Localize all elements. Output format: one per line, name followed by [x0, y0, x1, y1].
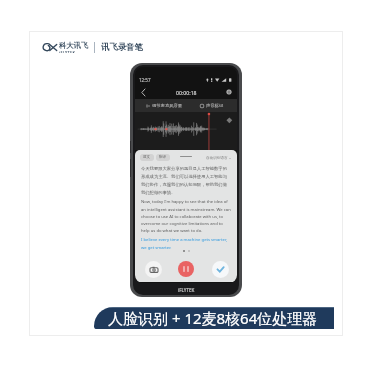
button[interactable]: More options	[221, 85, 237, 99]
button[interactable]: Done	[212, 261, 229, 278]
staticText: 原文	[143, 155, 151, 160]
staticText: Now, today I'm happy to see that the ide…	[141, 199, 231, 233]
button[interactable]: Camera	[145, 261, 162, 278]
staticText: I believe every time a machine gets smar…	[141, 237, 231, 250]
button[interactable]: 人脸识别 + 12麦8核64位处理器	[94, 307, 334, 329]
button[interactable]: 翻译	[156, 154, 170, 161]
button[interactable]: Back	[135, 85, 151, 99]
button[interactable]: 原文	[140, 154, 154, 161]
button[interactable]: Pause recording	[178, 261, 194, 277]
staticText: iFLYTEK	[178, 287, 195, 293]
staticText: 讯飞录音笔	[101, 42, 143, 53]
staticText: 科大讯飞	[59, 41, 89, 50]
staticText: iFLYTEK	[59, 50, 76, 53]
staticText: 00:00:18	[176, 89, 197, 96]
staticText: 自动识别语言 ⌄	[206, 155, 232, 160]
staticText: 调节麦克风音量	[152, 103, 183, 108]
staticText: 翻译	[159, 155, 167, 160]
button[interactable]: 声音标记	[200, 103, 224, 108]
staticText: 12:57	[139, 77, 151, 83]
staticText: 今天我要跟大家分享的题目是人工智能数字的形成成为主流。我们可以选择使用人工智能与…	[141, 166, 231, 195]
staticText: 人脸识别 + 12麦8核64位处理器	[108, 308, 318, 328]
staticText: 声音标记	[206, 103, 224, 108]
button[interactable]: 调节麦克风音量	[146, 103, 183, 108]
